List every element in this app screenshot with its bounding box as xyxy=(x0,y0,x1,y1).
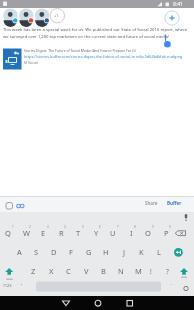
staticText: 9 xyxy=(152,225,154,229)
staticText: ! xyxy=(150,267,152,276)
staticText: H xyxy=(103,247,109,257)
staticText: 6 xyxy=(99,225,101,229)
staticText: 5 xyxy=(82,225,84,229)
staticText: M Social xyxy=(24,60,38,65)
button[interactable]: X xyxy=(43,262,59,280)
button[interactable] xyxy=(1,263,18,281)
button[interactable]: This week has been a special week for us… xyxy=(3,27,192,44)
staticText: A xyxy=(17,247,22,257)
button[interactable]: Share xyxy=(145,200,165,210)
staticText: D xyxy=(51,247,57,257)
staticText: I xyxy=(130,228,133,238)
staticText: ?123 xyxy=(3,283,12,288)
button[interactable] xyxy=(170,225,192,243)
button[interactable]: N xyxy=(113,262,129,280)
button[interactable]: G xyxy=(81,243,97,261)
staticText: S xyxy=(34,247,39,257)
staticText: E xyxy=(41,228,46,238)
staticText: Z xyxy=(31,266,36,276)
staticText: U xyxy=(110,228,116,238)
staticText: , xyxy=(21,280,23,287)
button[interactable]: O xyxy=(140,224,156,242)
staticText: This week has been a special week for us… xyxy=(3,27,188,33)
button[interactable]: Q xyxy=(0,224,16,242)
button[interactable] xyxy=(88,296,108,310)
button[interactable]: V xyxy=(78,262,94,280)
staticText: ? xyxy=(166,267,169,276)
button[interactable]: E xyxy=(35,224,51,242)
staticText: . xyxy=(171,280,173,287)
button[interactable]: M xyxy=(130,262,146,280)
button[interactable] xyxy=(168,244,190,262)
staticText: Share xyxy=(145,200,158,206)
button[interactable] xyxy=(120,296,140,310)
staticText: C xyxy=(66,266,71,276)
button[interactable]: L xyxy=(151,243,167,261)
staticText: https://stories.buffer.com/stories-diges… xyxy=(24,54,135,59)
staticText: T xyxy=(76,228,81,238)
button[interactable] xyxy=(36,280,161,293)
button[interactable]: Buffer xyxy=(167,200,189,210)
button[interactable]: H xyxy=(98,243,114,261)
staticText: we surveyed over 1,200 top marketers on … xyxy=(3,34,170,40)
staticText: B xyxy=(101,266,106,276)
staticText: edia-5d64bdkfak-nudging xyxy=(136,54,183,59)
button[interactable]: J xyxy=(116,243,132,261)
button[interactable]: C xyxy=(60,262,76,280)
button[interactable]: A xyxy=(11,243,27,261)
staticText: Buffer xyxy=(167,200,182,206)
staticText: 3 xyxy=(47,225,49,229)
staticText: W xyxy=(23,228,30,238)
button[interactable]: K xyxy=(133,243,149,261)
button[interactable]: Y xyxy=(88,224,104,242)
button[interactable]: I xyxy=(123,224,139,242)
staticText: R xyxy=(59,228,64,238)
button[interactable]: U xyxy=(105,224,121,242)
staticText: 4 xyxy=(64,225,66,229)
button[interactable]: D xyxy=(46,243,62,261)
staticText: 1 xyxy=(12,225,14,229)
staticText: Stories Digest: The Future of Social Med… xyxy=(24,48,136,53)
staticText: 7 xyxy=(117,225,119,229)
button[interactable]: T xyxy=(70,224,86,242)
staticText: M xyxy=(135,266,142,276)
staticText: O xyxy=(145,228,151,238)
button[interactable]: Z xyxy=(25,262,41,280)
staticText: +1 xyxy=(54,13,59,18)
staticText: 9:41 xyxy=(173,1,183,8)
staticText: X xyxy=(49,266,54,276)
staticText: G xyxy=(86,247,92,257)
staticText: K xyxy=(139,247,144,257)
button[interactable]: W xyxy=(18,224,34,242)
button[interactable]: Stories Digest: The Future of Social Med… xyxy=(3,48,191,70)
button[interactable]: R xyxy=(53,224,69,242)
staticText: J xyxy=(123,247,126,257)
staticText: 8 xyxy=(134,225,136,229)
button[interactable] xyxy=(1,280,19,293)
staticText: F xyxy=(69,247,73,257)
staticText: N xyxy=(118,266,124,276)
button[interactable]: B xyxy=(95,262,111,280)
staticText: L xyxy=(157,247,161,257)
button[interactable]: F xyxy=(63,243,79,261)
button[interactable]: P xyxy=(158,224,174,242)
staticText: Q xyxy=(5,228,11,238)
staticText: V xyxy=(84,266,89,276)
staticText: Y xyxy=(94,228,99,238)
staticText: P xyxy=(164,228,169,238)
button[interactable]: S xyxy=(28,243,44,261)
staticText: 0 xyxy=(169,225,171,229)
button[interactable] xyxy=(56,296,76,310)
staticText: 2 xyxy=(29,225,31,229)
